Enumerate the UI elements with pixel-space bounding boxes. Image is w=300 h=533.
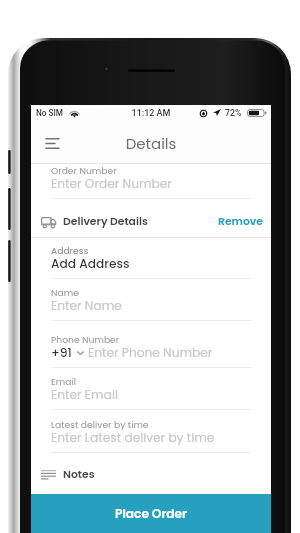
staticText: Name <box>51 286 79 299</box>
staticText: Delivery Details <box>63 214 148 229</box>
button[interactable]: Email <box>31 375 271 410</box>
staticText: Place Order <box>115 505 188 522</box>
staticText: Remove <box>218 214 263 229</box>
button[interactable]: Open navigation menu <box>40 131 64 155</box>
button[interactable]: Phone Number <box>31 333 271 368</box>
staticText: Email <box>51 375 76 388</box>
staticText: Enter Phone Number <box>88 344 213 361</box>
button[interactable]: Delivery Details <box>31 199 271 237</box>
button[interactable]: Latest deliver by time <box>31 418 271 453</box>
staticText: Address <box>51 244 89 257</box>
staticText: Latest deliver by time <box>51 418 149 431</box>
button[interactable]: Address <box>31 244 271 279</box>
staticText: Notes <box>63 467 95 482</box>
staticText: Add Address <box>51 255 130 272</box>
staticText: Order Number <box>51 164 117 177</box>
button[interactable]: Order Number <box>31 164 271 199</box>
staticText: 72% <box>225 108 242 118</box>
staticText: Phone Number <box>51 333 120 346</box>
button[interactable]: Place Order <box>31 494 271 533</box>
staticText: 11:12 AM <box>111 108 191 119</box>
staticText: Enter Email <box>51 386 118 403</box>
staticText: Enter Order Number <box>51 175 172 192</box>
button[interactable]: Name <box>31 286 271 321</box>
staticText: Enter Name <box>51 297 122 314</box>
button[interactable]: Remove <box>218 214 263 229</box>
staticText: No SIM <box>36 108 63 118</box>
staticText: +91 <box>51 344 72 361</box>
button[interactable]: Notes <box>31 452 271 490</box>
staticText: Enter Latest deliver by time <box>51 429 215 446</box>
staticText: Details <box>101 133 201 154</box>
